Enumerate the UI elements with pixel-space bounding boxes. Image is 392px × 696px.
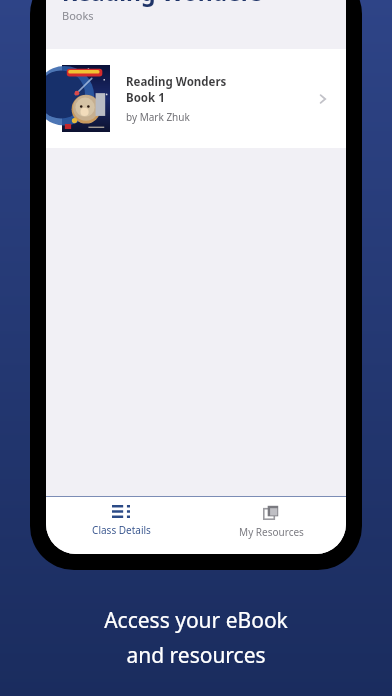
staticText: Reading Wonders	[62, 0, 263, 7]
button[interactable]: Reading Wonders	[46, 49, 346, 148]
staticText: Book 1	[126, 90, 165, 106]
staticText: My Resources	[239, 525, 304, 539]
staticText: Books	[62, 8, 94, 23]
staticText: Reading Wonders	[126, 74, 227, 90]
button[interactable]: My Resources	[196, 497, 346, 554]
staticText: and resources	[126, 641, 266, 670]
staticText: by Mark Zhuk	[126, 110, 190, 124]
button[interactable]: Class Details	[46, 497, 196, 554]
staticText: Access your eBook	[104, 606, 288, 635]
staticText: Class Details	[92, 523, 151, 537]
